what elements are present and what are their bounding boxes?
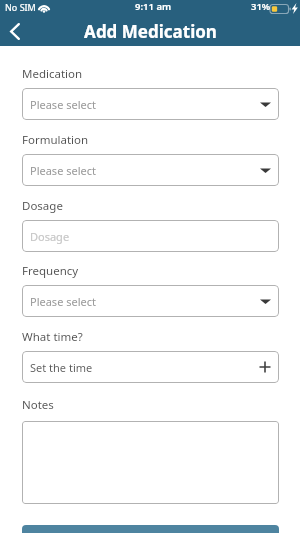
staticText: Please select [30, 97, 260, 112]
button[interactable]: Please select [22, 154, 279, 186]
button[interactable]: Back [0, 17, 29, 46]
staticText: No SIM [5, 1, 36, 13]
button[interactable]: Please select [22, 88, 279, 120]
button[interactable]: Set the time [22, 351, 279, 383]
button[interactable]: Dosage [22, 220, 279, 252]
staticText: 9:11 am [135, 0, 172, 13]
button[interactable] [22, 421, 279, 504]
button[interactable]: Save [22, 525, 279, 533]
staticText: Dosage [30, 229, 271, 244]
staticText: 31% [251, 0, 271, 13]
staticText: Formulation [22, 132, 89, 148]
staticText: What time? [22, 329, 83, 345]
staticText: Medication [22, 66, 83, 82]
staticText: Notes [22, 397, 54, 413]
staticText: Please select [30, 294, 260, 309]
button[interactable]: Please select [22, 285, 279, 317]
staticText: Set the time [30, 360, 259, 375]
staticText: Dosage [22, 198, 63, 214]
staticText: Add Medication [84, 20, 217, 43]
staticText: Frequency [22, 263, 79, 279]
staticText: Please select [30, 163, 260, 178]
